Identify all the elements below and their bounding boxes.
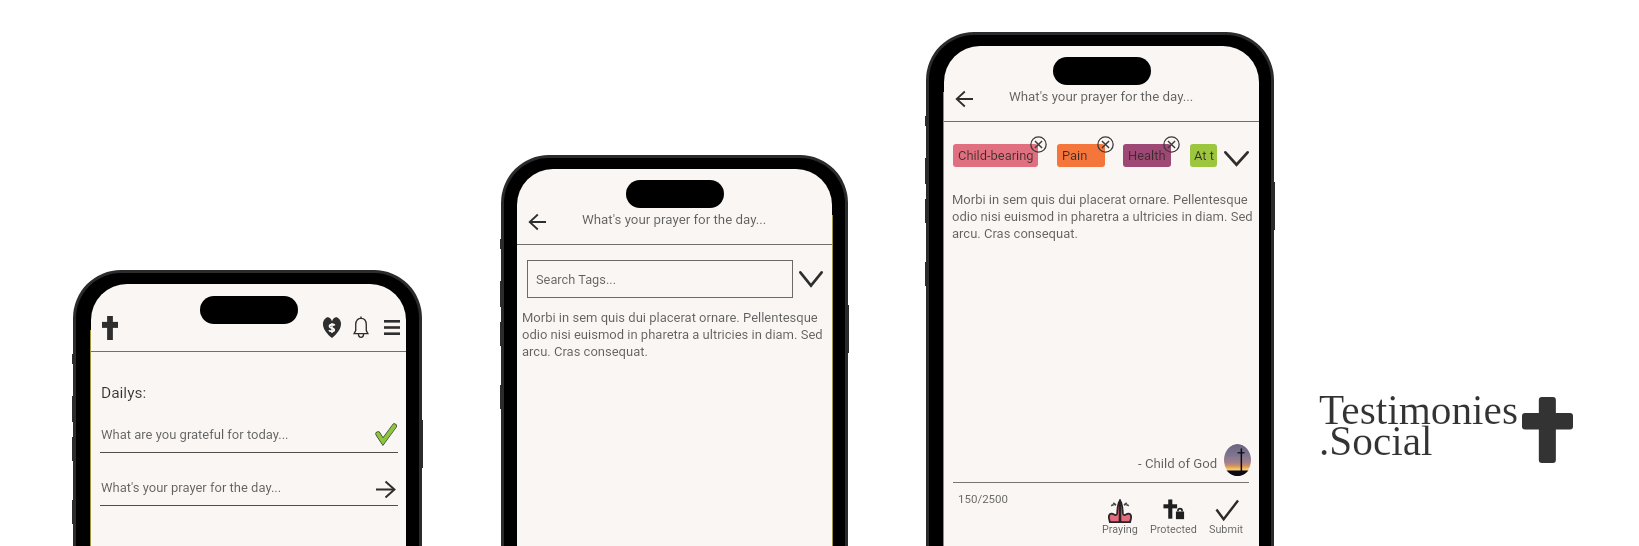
button[interactable] xyxy=(1057,144,1105,167)
button[interactable]: Home xyxy=(102,316,118,340)
staticText: Health xyxy=(1128,148,1166,163)
staticText: .Social xyxy=(1319,418,1433,464)
staticText: What's your prayer for the day... xyxy=(582,212,767,228)
button[interactable]: Protected xyxy=(1150,499,1197,536)
button[interactable]: What's your prayer for the day... xyxy=(91,473,406,509)
button[interactable]: Back xyxy=(956,91,973,107)
button[interactable]: Expand tags xyxy=(1224,151,1249,166)
button[interactable]: Submit xyxy=(1209,499,1244,536)
button[interactable]: Remove tag xyxy=(1030,136,1047,153)
staticText: Dailys: xyxy=(101,384,147,402)
button[interactable]: Back xyxy=(529,214,546,230)
staticText: 150/2500 xyxy=(958,492,1008,505)
button[interactable]: Praying xyxy=(1102,499,1138,536)
staticText: Protected xyxy=(1150,523,1197,536)
button[interactable]: Remove tag xyxy=(1097,136,1114,153)
button[interactable]: Profile picture xyxy=(1224,444,1251,476)
button[interactable]: What are you grateful for today... xyxy=(91,420,406,456)
staticText: Child-bearing xyxy=(958,148,1034,163)
button[interactable]: Notifications xyxy=(353,316,369,338)
staticText: Submit xyxy=(1209,523,1244,536)
staticText: At t xyxy=(1194,148,1214,163)
button[interactable] xyxy=(1123,144,1171,167)
staticText: Testimonies xyxy=(1319,387,1518,433)
button[interactable]: Donations xyxy=(321,317,343,338)
button[interactable]: Expand tags xyxy=(799,271,823,287)
button[interactable]: Remove tag xyxy=(1163,136,1180,153)
staticText: Morbi in sem quis dui placerat ornare. P… xyxy=(522,310,823,360)
staticText: - Child of God xyxy=(1138,456,1218,471)
button[interactable] xyxy=(953,144,1038,167)
staticText: Pain xyxy=(1062,148,1088,163)
staticText: What's your prayer for the day... xyxy=(1009,89,1194,105)
staticText: What's your prayer for the day... xyxy=(101,480,282,495)
button[interactable]: At t xyxy=(1190,144,1217,167)
staticText: Praying xyxy=(1102,523,1138,536)
staticText: Morbi in sem quis dui placerat ornare. P… xyxy=(952,192,1253,242)
button[interactable]: Search Tags... xyxy=(527,260,793,298)
staticText: Search Tags... xyxy=(536,272,617,287)
button[interactable]: - Child of God xyxy=(1138,447,1218,479)
button[interactable]: Menu xyxy=(384,320,400,335)
staticText: What are you grateful for today... xyxy=(101,427,289,442)
